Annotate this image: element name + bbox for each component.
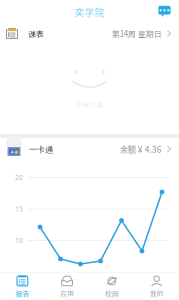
button[interactable]: 应用 bbox=[45, 272, 90, 300]
staticText: 20 bbox=[15, 173, 23, 182]
button[interactable]: 消息 bbox=[155, 1, 174, 21]
button[interactable]: 课表 bbox=[0, 23, 179, 44]
button[interactable]: 一卡通 bbox=[0, 138, 179, 160]
staticText: 15 bbox=[15, 204, 23, 213]
staticText: 第14周 星期日 bbox=[112, 28, 162, 39]
staticText: 今日无课 bbox=[75, 99, 103, 109]
staticText: 应用 bbox=[60, 288, 74, 298]
staticText: 我的 bbox=[150, 288, 164, 298]
staticText: 10 bbox=[15, 236, 23, 245]
staticText: 报告 bbox=[15, 288, 29, 298]
staticText: 余额 ¥ 4.36 bbox=[120, 143, 162, 155]
button[interactable]: 报告 bbox=[0, 272, 45, 300]
button[interactable]: 我的 bbox=[134, 272, 179, 300]
staticText: 奕学院 bbox=[74, 5, 104, 19]
staticText: 校园 bbox=[105, 288, 119, 298]
staticText: 课表 bbox=[28, 28, 44, 39]
button[interactable]: 校园 bbox=[89, 272, 134, 300]
staticText: 一卡通 bbox=[29, 143, 53, 155]
